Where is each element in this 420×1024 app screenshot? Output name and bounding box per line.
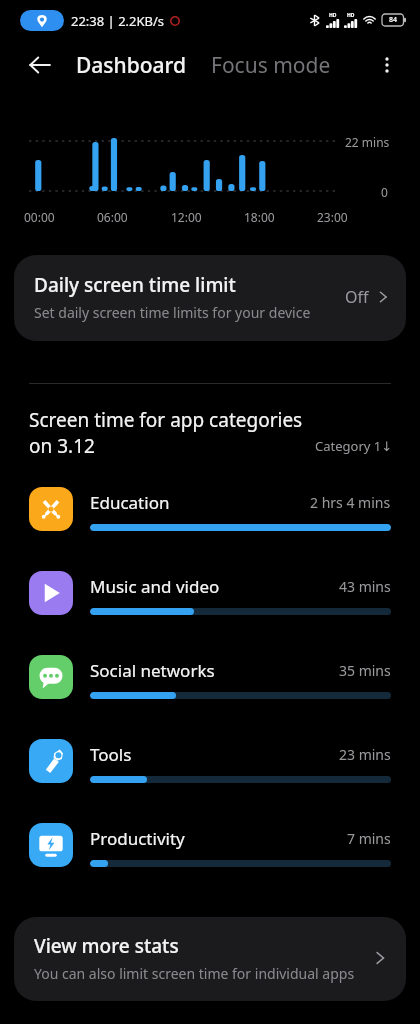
staticText: 22:38 | 2.2KB/s <box>71 12 165 30</box>
staticText: 23:00 <box>317 209 348 225</box>
staticText: HD <box>347 12 355 19</box>
staticText: HD <box>329 12 337 19</box>
staticText: Dashboard <box>76 51 187 80</box>
staticText: 35 mins <box>339 661 391 680</box>
staticText: Screen time for app categories on 3.12 <box>29 407 315 459</box>
staticText: Productivity <box>90 827 347 850</box>
button[interactable]: Daily screen time limit <box>14 255 406 341</box>
button[interactable]: Education <box>0 481 420 565</box>
staticText: 12:00 <box>171 209 202 225</box>
staticText: Off <box>345 286 369 308</box>
staticText: 23 mins <box>339 745 391 764</box>
staticText: Category 1↓ <box>315 441 393 455</box>
button[interactable]: Back <box>18 43 62 87</box>
staticText: Education <box>90 491 310 514</box>
staticText: 22 mins <box>345 134 390 150</box>
button[interactable]: More options <box>366 44 408 86</box>
staticText: 2 hrs 4 mins <box>310 493 391 512</box>
button[interactable]: Tools <box>0 733 420 817</box>
button[interactable]: Focus mode <box>211 51 331 80</box>
staticText: 0 <box>381 184 388 200</box>
staticText: 43 mins <box>339 577 391 596</box>
staticText: Focus mode <box>211 51 331 80</box>
button[interactable]: Dashboard <box>76 51 187 80</box>
staticText: Social networks <box>90 659 339 682</box>
staticText: Daily screen time limit <box>34 272 236 298</box>
staticText: 18:00 <box>244 209 275 225</box>
button[interactable]: Productivity <box>0 817 420 901</box>
button[interactable]: Social networks <box>0 649 420 733</box>
staticText: View more stats <box>34 933 179 959</box>
staticText: 00:00 <box>24 209 55 225</box>
staticText: Tools <box>90 743 339 766</box>
staticText: 7 mins <box>347 829 391 848</box>
staticText: You can also limit screen time for indiv… <box>34 964 355 983</box>
staticText: 84 <box>389 15 398 25</box>
staticText: 06:00 <box>97 209 128 225</box>
staticText: Music and video <box>90 575 339 598</box>
button[interactable]: View more stats <box>14 917 406 1001</box>
staticText: Set daily screen time limits for your de… <box>34 303 311 322</box>
button[interactable]: Music and video <box>0 565 420 649</box>
button[interactable]: Category 1↓ <box>315 441 393 459</box>
